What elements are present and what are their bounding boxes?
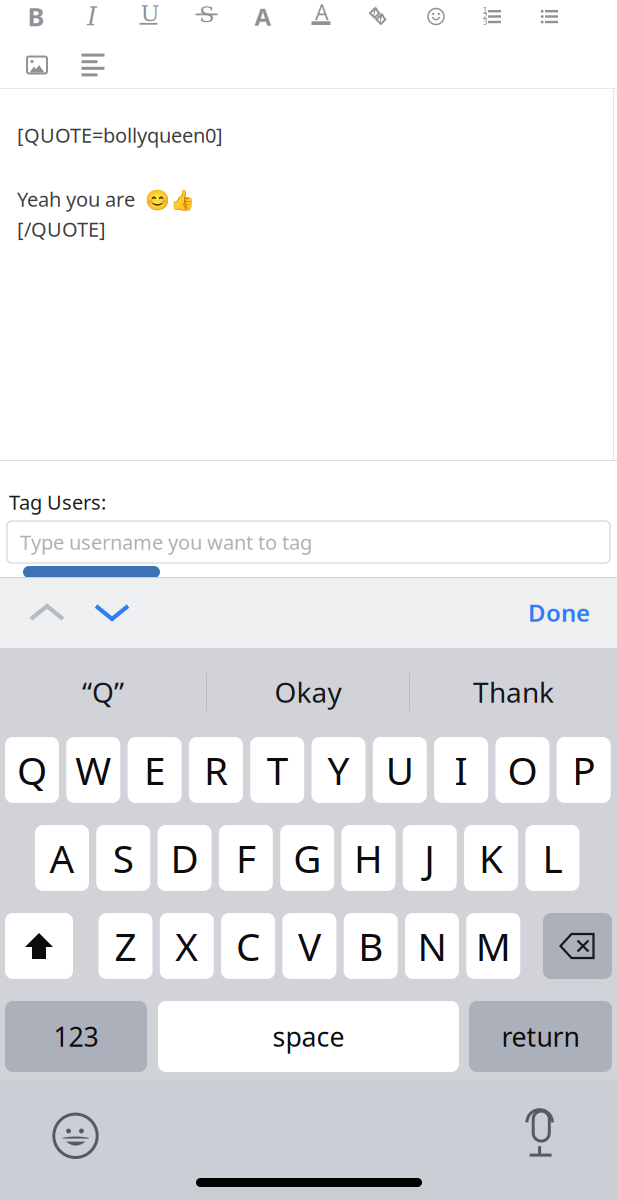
button[interactable]: Next field bbox=[86, 577, 138, 648]
button[interactable]: O bbox=[495, 737, 549, 803]
staticText: L bbox=[542, 832, 562, 884]
staticText: Okay bbox=[274, 673, 341, 711]
button[interactable]: Emoji bbox=[410, 0, 462, 33]
button[interactable]: return bbox=[469, 1001, 612, 1072]
button[interactable]: H bbox=[341, 825, 395, 891]
button[interactable]: D bbox=[158, 825, 212, 891]
staticText: 3 bbox=[482, 17, 487, 27]
staticText: E bbox=[144, 744, 165, 796]
button[interactable]: Bulleted list bbox=[523, 0, 575, 33]
button[interactable]: Q bbox=[5, 737, 59, 803]
staticText: “Q” bbox=[82, 673, 124, 711]
staticText: V bbox=[298, 920, 321, 972]
button[interactable]: Okay bbox=[207, 648, 409, 736]
staticText: M bbox=[476, 920, 511, 972]
button[interactable]: K bbox=[464, 825, 518, 891]
button[interactable]: S bbox=[96, 825, 150, 891]
button[interactable]: M bbox=[466, 913, 520, 979]
staticText: S bbox=[113, 832, 134, 884]
staticText: A bbox=[315, 0, 329, 26]
button[interactable]: R bbox=[189, 737, 243, 803]
button[interactable]: Shift bbox=[5, 913, 73, 979]
staticText: O bbox=[507, 744, 537, 796]
button[interactable]: B bbox=[344, 913, 398, 979]
button[interactable]: Emoji keyboard bbox=[48, 1108, 104, 1164]
button[interactable]: E bbox=[128, 737, 182, 803]
button[interactable]: Text colour bbox=[296, 0, 348, 33]
staticText: I bbox=[87, 2, 97, 31]
staticText: W bbox=[75, 744, 111, 796]
button[interactable]: V bbox=[282, 913, 336, 979]
button[interactable]: P bbox=[557, 737, 611, 803]
button[interactable]: Bold bbox=[10, 0, 62, 33]
button[interactable]: space bbox=[158, 1001, 459, 1072]
staticText: 2 bbox=[482, 12, 487, 21]
staticText: Tag Users: bbox=[9, 489, 106, 515]
button[interactable]: Paragraph alignment bbox=[67, 48, 119, 82]
staticText: Done bbox=[528, 597, 590, 628]
button[interactable]: W bbox=[66, 737, 120, 803]
staticText: X bbox=[175, 920, 198, 972]
staticText: 1 bbox=[482, 6, 487, 16]
button[interactable]: Underline bbox=[124, 0, 176, 33]
button[interactable]: “Q” bbox=[0, 648, 206, 736]
button[interactable]: C bbox=[221, 913, 275, 979]
button[interactable]: J bbox=[403, 825, 457, 891]
staticText: Type username you want to tag bbox=[20, 529, 312, 555]
button[interactable]: N bbox=[405, 913, 459, 979]
staticText: space bbox=[272, 1019, 344, 1054]
staticText: Q bbox=[17, 744, 47, 796]
button[interactable]: Y bbox=[311, 737, 365, 803]
staticText: [QUOTE=bollyqueen0] bbox=[17, 122, 223, 148]
staticText: [/QUOTE] bbox=[17, 216, 106, 242]
button[interactable]: I bbox=[434, 737, 488, 803]
staticText: return bbox=[501, 1019, 579, 1054]
button[interactable]: Z bbox=[98, 913, 152, 979]
staticText: A bbox=[49, 832, 74, 884]
button[interactable]: L bbox=[525, 825, 579, 891]
staticText: Z bbox=[114, 920, 136, 972]
button[interactable]: Done bbox=[500, 577, 590, 648]
staticText: F bbox=[236, 832, 256, 884]
staticText: 123 bbox=[53, 1019, 98, 1054]
staticText: N bbox=[417, 920, 446, 972]
button[interactable]: Previous field bbox=[21, 577, 73, 648]
button[interactable]: Strikethrough bbox=[181, 0, 233, 33]
staticText: S bbox=[199, 1, 215, 28]
button[interactable]: Numbered list bbox=[466, 0, 518, 33]
button[interactable]: Font bbox=[237, 0, 289, 33]
staticText: P bbox=[572, 744, 595, 796]
staticText: Yeah you are 😊👍 bbox=[17, 186, 195, 212]
staticText: U bbox=[140, 0, 159, 27]
button[interactable]: T bbox=[250, 737, 304, 803]
staticText: C bbox=[236, 920, 260, 972]
staticText: D bbox=[171, 832, 199, 884]
staticText: T bbox=[267, 744, 288, 796]
button[interactable]: Thank bbox=[410, 648, 617, 736]
staticText: U bbox=[386, 744, 414, 796]
button[interactable]: Delete bbox=[543, 913, 612, 979]
staticText: B bbox=[27, 0, 44, 34]
button[interactable]: Insert image bbox=[11, 48, 63, 82]
staticText: Thank bbox=[473, 673, 554, 711]
button[interactable]: G bbox=[280, 825, 334, 891]
staticText: B bbox=[358, 920, 383, 972]
staticText: I bbox=[455, 744, 468, 796]
staticText: G bbox=[293, 832, 321, 884]
button[interactable]: X bbox=[160, 913, 214, 979]
button[interactable]: A bbox=[35, 825, 89, 891]
staticText: Y bbox=[327, 744, 349, 796]
button[interactable]: U bbox=[373, 737, 427, 803]
button[interactable]: F bbox=[219, 825, 273, 891]
staticText: J bbox=[424, 832, 435, 884]
staticText: H bbox=[354, 832, 383, 884]
button[interactable]: Insert link bbox=[352, 0, 404, 33]
button[interactable]: 123 bbox=[5, 1001, 147, 1072]
staticText: K bbox=[479, 832, 503, 884]
staticText: A bbox=[254, 0, 271, 33]
staticText: R bbox=[204, 744, 228, 796]
button[interactable]: Italic bbox=[66, 0, 118, 33]
button[interactable]: Dictation bbox=[520, 1106, 562, 1160]
